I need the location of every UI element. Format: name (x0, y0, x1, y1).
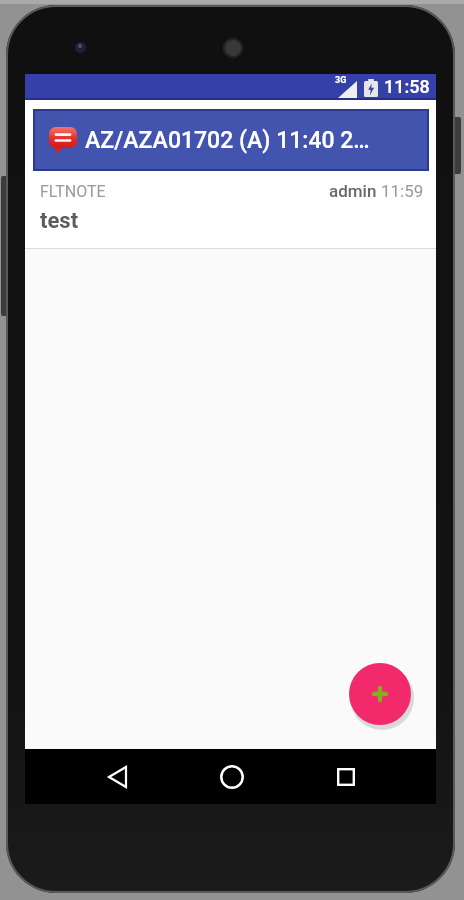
button[interactable]: FLTNOTE (25, 171, 436, 248)
staticText: 3G (335, 75, 347, 86)
staticText: FLTNOTE (40, 182, 106, 201)
button[interactable] (103, 763, 131, 791)
staticText: AZ/AZA01702 (A) 11:40 2… (85, 127, 370, 154)
staticText: test (40, 208, 79, 234)
button[interactable] (218, 763, 246, 791)
button[interactable] (349, 663, 411, 725)
staticText: 11:59 (381, 181, 424, 201)
staticText: 11:58 (384, 76, 430, 97)
button[interactable] (332, 763, 360, 791)
button[interactable]: AZ/AZA01702 (A) 11:40 2… (33, 109, 429, 171)
staticText: admin (329, 181, 381, 201)
